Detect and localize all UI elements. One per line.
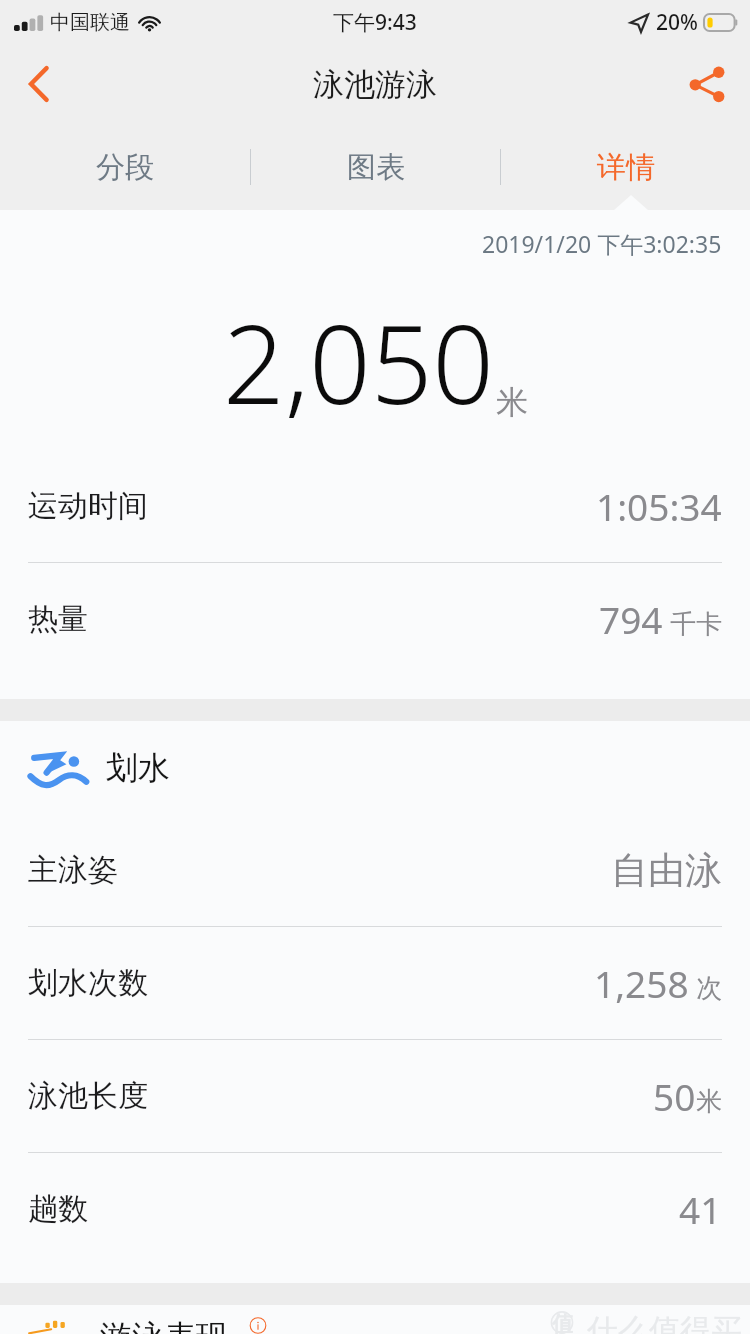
staticText: 1:05:34	[596, 481, 722, 531]
staticText: 什么值得买	[587, 1311, 742, 1334]
button[interactable]: 主泳姿	[0, 814, 750, 926]
staticText: 1,258	[594, 958, 689, 1008]
staticText: 热量	[28, 600, 88, 638]
button[interactable]: 泳池长度	[0, 1040, 750, 1152]
button[interactable]: Back	[0, 44, 78, 124]
staticText: 中国联通	[50, 10, 130, 35]
staticText: 千卡	[670, 608, 722, 641]
staticText: 米	[696, 1085, 722, 1118]
staticText: 50	[653, 1071, 696, 1121]
staticText: 泳池游泳	[313, 65, 437, 104]
staticText: 图表	[347, 149, 405, 186]
button[interactable]: Info	[240, 1317, 276, 1334]
staticText: 20%	[656, 8, 698, 37]
button[interactable]: 运动时间	[0, 450, 750, 562]
staticText: 运动时间	[28, 487, 148, 525]
button[interactable]: 详情	[501, 124, 750, 210]
staticText: 游泳表现	[100, 1317, 228, 1334]
staticText: 泳池长度	[28, 1077, 148, 1115]
button[interactable]: 划水次数	[0, 927, 750, 1039]
staticText: 米	[496, 382, 528, 422]
button[interactable]: Share	[664, 44, 750, 124]
button[interactable]: 趟数	[0, 1153, 750, 1265]
staticText: 2019/1/20 下午3:02:35	[482, 228, 722, 259]
staticText: 主泳姿	[28, 851, 118, 889]
staticText: 划水次数	[28, 964, 148, 1002]
staticText: 划水	[106, 748, 170, 788]
staticText: 下午9:43	[333, 8, 417, 37]
staticText: 趟数	[28, 1190, 88, 1228]
staticText: 分段	[96, 149, 154, 186]
button[interactable]: 图表	[251, 124, 500, 210]
staticText: 2,050	[223, 289, 494, 436]
button[interactable]: 分段	[0, 124, 250, 210]
staticText: 值	[552, 1311, 573, 1334]
button[interactable]: 热量	[0, 563, 750, 675]
staticText: 41	[679, 1184, 722, 1234]
staticText: 次	[696, 972, 722, 1005]
staticText: 自由泳	[611, 847, 722, 894]
staticText: 794	[599, 594, 663, 644]
staticText: 详情	[597, 149, 655, 186]
